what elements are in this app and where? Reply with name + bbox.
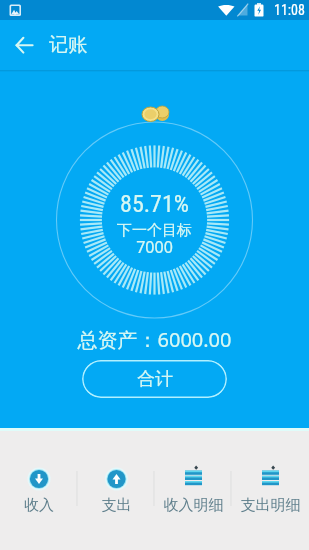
- staticText: 下一个目标: [0, 221, 309, 240]
- button[interactable]: 合计: [82, 360, 227, 398]
- staticText: 11:08: [274, 2, 305, 18]
- staticText: 记账: [49, 33, 87, 57]
- staticText: 合计: [137, 368, 173, 391]
- staticText: 收入明细: [155, 496, 232, 515]
- staticText: 7000: [0, 236, 309, 258]
- staticText: 支出明细: [232, 496, 309, 515]
- button[interactable]: 收入: [0, 429, 78, 550]
- staticText: 总资产：6000.00: [0, 326, 309, 353]
- button[interactable]: 支出明细: [232, 429, 309, 550]
- button[interactable]: 支出: [78, 429, 155, 550]
- button[interactable]: 收入明细: [155, 429, 232, 550]
- staticText: 收入: [0, 496, 78, 515]
- button[interactable]: Back: [0, 20, 48, 70]
- staticText: 85.71%: [0, 190, 309, 218]
- staticText: 支出: [78, 496, 155, 515]
